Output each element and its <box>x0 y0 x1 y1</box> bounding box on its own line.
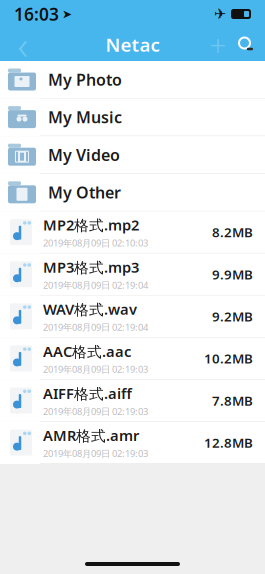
staticText: 2019年08月09日 02:10:03 <box>43 237 148 249</box>
staticText: My Other <box>48 182 121 203</box>
staticText: WAV格式.wav <box>43 299 137 319</box>
staticText: + <box>209 25 226 64</box>
button[interactable]: My Other <box>0 174 265 211</box>
staticText: 12.8MB <box>204 434 253 451</box>
staticText: MP3格式.mp3 <box>43 257 139 277</box>
staticText: AIFF格式.aiff <box>43 384 132 403</box>
staticText: ‹ <box>17 18 28 71</box>
button[interactable]: AMR格式.amr <box>0 422 265 464</box>
button[interactable]: My Photo <box>0 61 265 99</box>
staticText: AAC格式.aac <box>43 341 131 361</box>
button[interactable]: MP2格式.mp2 <box>0 211 265 253</box>
staticText: 2019年08月09日 02:19:04 <box>43 279 148 291</box>
staticText: 9.9MB <box>212 265 253 283</box>
button[interactable]: My Music <box>0 99 265 136</box>
staticText: 2019年08月09日 02:19:03 <box>43 363 148 375</box>
button[interactable]: My Video <box>0 136 265 174</box>
staticText: Netac <box>105 32 159 57</box>
button[interactable]: Add <box>205 28 231 61</box>
staticText: ➤ <box>62 7 72 21</box>
button[interactable]: AIFF格式.aiff <box>0 380 265 422</box>
button[interactable]: Search <box>231 28 261 61</box>
staticText: 2019年08月09日 02:19:04 <box>43 321 148 333</box>
staticText: MP2格式.mp2 <box>43 215 139 235</box>
staticText: 9.2MB <box>212 307 253 325</box>
staticText: 2019年08月09日 02:19:03 <box>43 405 148 417</box>
staticText: My Video <box>48 144 120 165</box>
button[interactable]: AAC格式.aac <box>0 338 265 380</box>
staticText: 16:03 <box>14 2 59 25</box>
staticText: My Photo <box>48 69 122 90</box>
staticText: My Music <box>48 106 122 128</box>
button[interactable]: Back <box>4 28 42 61</box>
staticText: 8.2MB <box>212 223 253 241</box>
button[interactable]: WAV格式.wav <box>0 296 265 338</box>
staticText: AMR格式.amr <box>43 426 139 445</box>
staticText: 2019年08月09日 02:19:03 <box>43 447 148 460</box>
staticText: 7.8MB <box>212 392 253 409</box>
staticText: 10.2MB <box>204 350 253 367</box>
staticText: ✈ <box>214 6 226 22</box>
button[interactable]: MP3格式.mp3 <box>0 253 265 296</box>
